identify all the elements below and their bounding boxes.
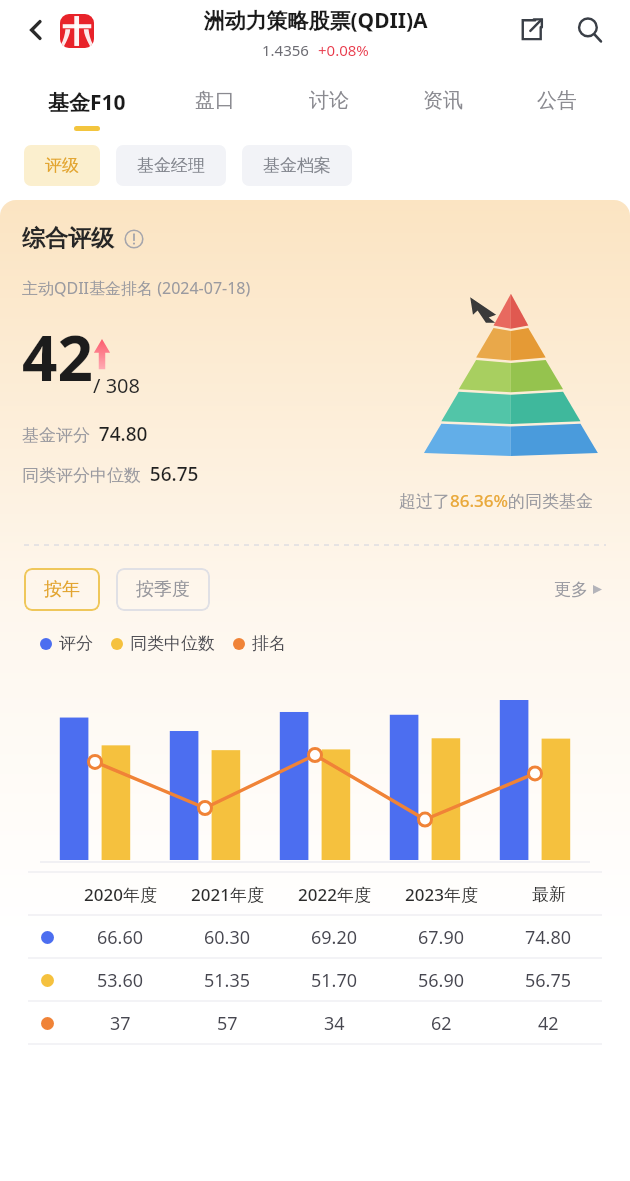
staticText: 57	[217, 1011, 238, 1036]
staticText: 42	[22, 315, 93, 399]
button[interactable]: 资讯	[386, 88, 500, 127]
staticText: 56.75	[525, 968, 572, 993]
staticText: 基金经理	[137, 155, 205, 176]
staticText: 按年	[44, 578, 80, 601]
staticText: 同类中位数	[130, 633, 215, 654]
staticText: 53.60	[97, 968, 144, 993]
staticText: 同类评分中位数 56.75	[22, 461, 199, 487]
staticText: 2023年度	[405, 883, 478, 906]
staticText: 34	[324, 1011, 345, 1036]
staticText: / 308	[93, 372, 140, 399]
staticText: 62	[431, 1011, 452, 1036]
staticText: 60.30	[204, 925, 251, 950]
staticText: 排名	[252, 633, 286, 654]
button[interactable]: 盘口	[158, 88, 272, 127]
staticText: 1.4356	[262, 40, 309, 60]
staticText: 洲动力策略股票(QDII)A	[203, 6, 428, 35]
button[interactable]: 按季度	[116, 568, 210, 611]
button[interactable]: 基金档案	[242, 145, 352, 186]
staticText: 67.90	[418, 925, 465, 950]
button[interactable]: 评级	[24, 145, 100, 186]
staticText: 按季度	[136, 578, 190, 601]
staticText: 评级	[45, 155, 79, 176]
button[interactable]: 公告	[500, 88, 614, 127]
staticText: 51.35	[204, 968, 251, 993]
staticText: 74.80	[525, 925, 572, 950]
button[interactable]: 基金F10	[16, 88, 158, 131]
staticText: 基金F10	[48, 88, 126, 117]
button[interactable]: Search	[568, 8, 612, 52]
staticText: 69.20	[311, 925, 358, 950]
staticText: 2022年度	[298, 883, 371, 906]
staticText: 公告	[537, 88, 577, 113]
staticText: 2021年度	[191, 883, 264, 906]
staticText: 56.90	[418, 968, 465, 993]
staticText: 基金评分 74.80	[22, 421, 148, 447]
button[interactable]: 基金经理	[116, 145, 226, 186]
staticText: 42	[538, 1011, 559, 1036]
staticText: +0.08%	[318, 40, 369, 60]
staticText: 讨论	[309, 88, 349, 113]
button[interactable]: 按年	[24, 568, 100, 611]
staticText: 基金档案	[263, 155, 331, 176]
staticText: 综合评级	[22, 224, 114, 253]
staticText: 2020年度	[84, 883, 157, 906]
staticText: 66.60	[97, 925, 144, 950]
staticText: 主动QDII基金排名 (2024-07-18)	[22, 277, 251, 299]
staticText: 盘口	[195, 88, 235, 113]
staticText: 51.70	[311, 968, 358, 993]
staticText: 资讯	[423, 88, 463, 113]
staticText: 评分	[59, 633, 93, 654]
button[interactable]: 更多	[550, 575, 606, 604]
button[interactable]: Info	[124, 229, 144, 249]
button[interactable]: Back	[14, 8, 58, 52]
staticText: 更多	[554, 579, 588, 600]
staticText: 37	[110, 1011, 131, 1036]
staticText: 超过了86.36%的同类基金	[399, 489, 594, 512]
button[interactable]: 讨论	[272, 88, 386, 127]
button[interactable]: Share	[510, 8, 552, 50]
staticText: 最新	[532, 884, 566, 905]
